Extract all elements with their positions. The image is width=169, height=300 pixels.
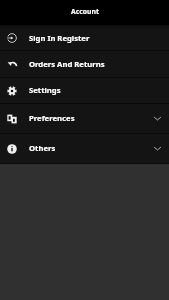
staticText: Sign In Register (29, 33, 90, 43)
button[interactable]: Sign In Register (0, 25, 169, 50)
staticText: Others (29, 143, 56, 153)
button[interactable]: Preferences (0, 104, 169, 133)
button[interactable]: Orders And Returns (0, 51, 169, 77)
staticText: Settings (29, 85, 61, 95)
staticText: Account (71, 7, 99, 16)
other: Expand Preferences (154, 115, 161, 122)
button[interactable]: Others (0, 134, 169, 163)
button[interactable]: Settings (0, 78, 169, 103)
staticText: Preferences (29, 113, 75, 123)
staticText: Orders And Returns (29, 59, 105, 69)
other: Expand Others (154, 145, 161, 152)
